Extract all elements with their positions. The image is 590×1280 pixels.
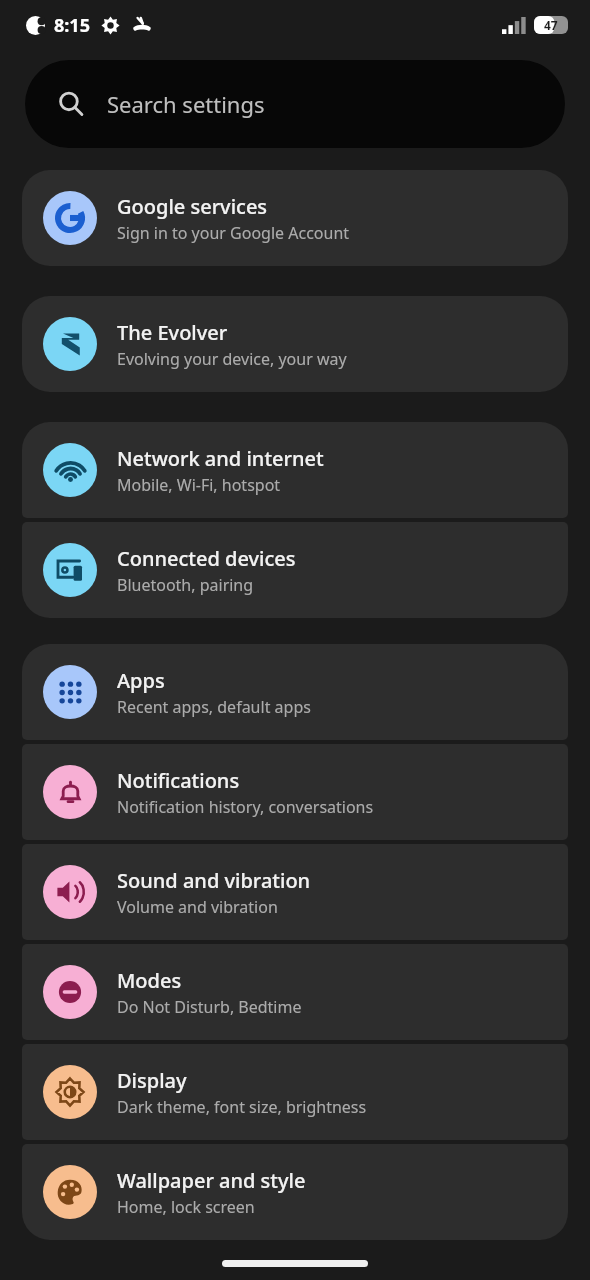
button[interactable]: Apps [22, 644, 568, 740]
staticText: Home, lock screen [117, 1196, 255, 1218]
staticText: Modes [117, 967, 182, 994]
button[interactable]: Modes [22, 944, 568, 1040]
button[interactable]: Wallpaper and style [22, 1144, 568, 1240]
staticText: Notifications [117, 767, 240, 794]
staticText: 8:15 [54, 13, 90, 38]
button[interactable]: Display [22, 1044, 568, 1140]
staticText: Notification history, conversations [117, 796, 374, 818]
staticText: 47 [544, 17, 558, 33]
staticText: Recent apps, default apps [117, 696, 311, 718]
button[interactable]: Google services [22, 170, 568, 266]
staticText: Sign in to your Google Account [117, 222, 350, 244]
staticText: Display [117, 1067, 187, 1094]
staticText: Google services [117, 193, 268, 220]
button[interactable]: Connected devices [22, 522, 568, 618]
staticText: Volume and vibration [117, 896, 278, 918]
button[interactable]: Notifications [22, 744, 568, 840]
staticText: Connected devices [117, 545, 296, 572]
staticText: Apps [117, 667, 165, 694]
staticText: Dark theme, font size, brightness [117, 1096, 367, 1118]
staticText: Bluetooth, pairing [117, 574, 254, 596]
staticText: Network and internet [117, 445, 324, 472]
staticText: Sound and vibration [117, 867, 311, 894]
staticText: Do Not Disturb, Bedtime [117, 996, 302, 1018]
button[interactable]: Network and internet [22, 422, 568, 518]
staticText: Wallpaper and style [117, 1167, 306, 1194]
staticText: Evolving your device, your way [117, 348, 347, 370]
staticText: Mobile, Wi-Fi, hotspot [117, 474, 281, 496]
button[interactable]: Search settings [25, 60, 565, 148]
button[interactable]: Sound and vibration [22, 844, 568, 940]
staticText: Search settings [107, 89, 265, 119]
staticText: The Evolver [117, 319, 228, 346]
button[interactable]: The Evolver [22, 296, 568, 392]
